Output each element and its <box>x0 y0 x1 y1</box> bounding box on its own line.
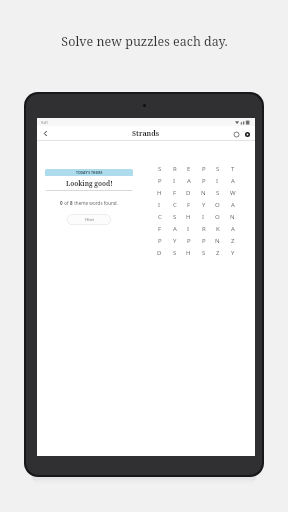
button[interactable]: H <box>183 211 194 222</box>
button[interactable]: H <box>183 247 194 258</box>
staticText: O <box>215 201 220 209</box>
button[interactable]: K <box>212 223 223 234</box>
button[interactable]: A <box>227 175 238 186</box>
staticText: I <box>216 177 219 185</box>
staticText: 0 <box>60 200 63 206</box>
staticText: TODAY'S THEME <box>76 170 103 175</box>
staticText: S <box>216 189 220 197</box>
staticText: R <box>202 225 206 233</box>
button[interactable]: E <box>183 163 194 174</box>
staticText: K <box>216 225 220 233</box>
staticText: Hint <box>85 217 94 223</box>
staticText: S <box>173 249 177 257</box>
staticText: C <box>158 213 162 221</box>
button[interactable]: I <box>183 223 194 234</box>
staticText: P <box>202 237 206 245</box>
button[interactable]: A <box>227 223 238 234</box>
staticText: P <box>158 237 162 245</box>
button[interactable]: S <box>169 211 180 222</box>
button[interactable]: I <box>198 211 209 222</box>
button[interactable]: I <box>169 175 180 186</box>
button[interactable]: P <box>154 175 165 186</box>
button[interactable]: N <box>212 235 223 246</box>
button[interactable]: Y <box>198 199 209 210</box>
staticText: Z <box>231 237 235 245</box>
button[interactable]: TODAY'S THEME <box>45 169 133 191</box>
staticText: P <box>158 177 162 185</box>
staticText: A <box>231 201 235 209</box>
staticText: Strands <box>132 129 160 139</box>
staticText: P <box>202 165 206 173</box>
staticText: F <box>173 189 177 197</box>
button[interactable]: N <box>198 187 209 198</box>
staticText: W <box>230 189 236 197</box>
staticText: F <box>187 201 191 209</box>
staticText: A <box>173 225 177 233</box>
staticText: Y <box>202 201 206 209</box>
button[interactable]: O <box>212 211 223 222</box>
staticText: Z <box>216 249 220 257</box>
button[interactable]: A <box>169 223 180 234</box>
button[interactable]: R <box>169 163 180 174</box>
button[interactable]: O <box>212 199 223 210</box>
staticText: I <box>173 177 176 185</box>
staticText: H <box>186 249 191 257</box>
staticText: A <box>187 177 191 185</box>
staticText: theme words found. <box>73 200 118 206</box>
staticText: A <box>231 225 235 233</box>
staticText: S <box>202 249 206 257</box>
button[interactable]: Z <box>212 247 223 258</box>
button[interactable]: F <box>169 187 180 198</box>
staticText: 8 <box>70 200 73 206</box>
button[interactable]: H <box>154 187 165 198</box>
button[interactable]: F <box>183 199 194 210</box>
button[interactable]: I <box>154 199 165 210</box>
button[interactable]: Back <box>40 128 51 139</box>
button[interactable]: Settings <box>242 129 252 139</box>
staticText: N <box>230 213 235 221</box>
button[interactable]: Z <box>227 235 238 246</box>
staticText: D <box>186 189 191 197</box>
button[interactable]: R <box>198 223 209 234</box>
button[interactable]: P <box>198 175 209 186</box>
staticText: S <box>158 165 162 173</box>
button[interactable]: A <box>227 199 238 210</box>
button[interactable]: P <box>198 163 209 174</box>
staticText: P <box>202 177 206 185</box>
staticText: I <box>202 213 205 221</box>
staticText: H <box>157 189 162 197</box>
button[interactable]: D <box>183 187 194 198</box>
button[interactable]: C <box>154 211 165 222</box>
staticText: Looking good! <box>66 179 113 188</box>
button[interactable]: Y <box>169 235 180 246</box>
staticText: H <box>186 213 191 221</box>
button[interactable]: W <box>227 187 238 198</box>
staticText: O <box>215 213 220 221</box>
button[interactable]: P <box>183 235 194 246</box>
staticText: E <box>187 165 191 173</box>
staticText: R <box>173 165 177 173</box>
button[interactable]: P <box>198 235 209 246</box>
button[interactable]: I <box>212 175 223 186</box>
staticText: F <box>158 225 162 233</box>
button[interactable]: S <box>212 187 223 198</box>
staticText: Solve new puzzles each day. <box>61 33 228 50</box>
button[interactable]: Y <box>227 247 238 258</box>
button[interactable]: T <box>227 163 238 174</box>
button[interactable]: D <box>154 247 165 258</box>
button[interactable]: F <box>154 223 165 234</box>
button[interactable]: S <box>198 247 209 258</box>
staticText: D <box>157 249 162 257</box>
button[interactable]: A <box>183 175 194 186</box>
staticText: Y <box>231 249 235 257</box>
staticText: P <box>187 237 191 245</box>
button[interactable]: C <box>169 199 180 210</box>
staticText: Y <box>173 237 177 245</box>
button[interactable]: Hint <box>67 214 111 225</box>
button[interactable]: P <box>154 235 165 246</box>
button[interactable]: S <box>212 163 223 174</box>
button[interactable]: N <box>227 211 238 222</box>
button[interactable]: S <box>169 247 180 258</box>
button[interactable]: S <box>154 163 165 174</box>
button[interactable]: Help <box>231 129 241 139</box>
